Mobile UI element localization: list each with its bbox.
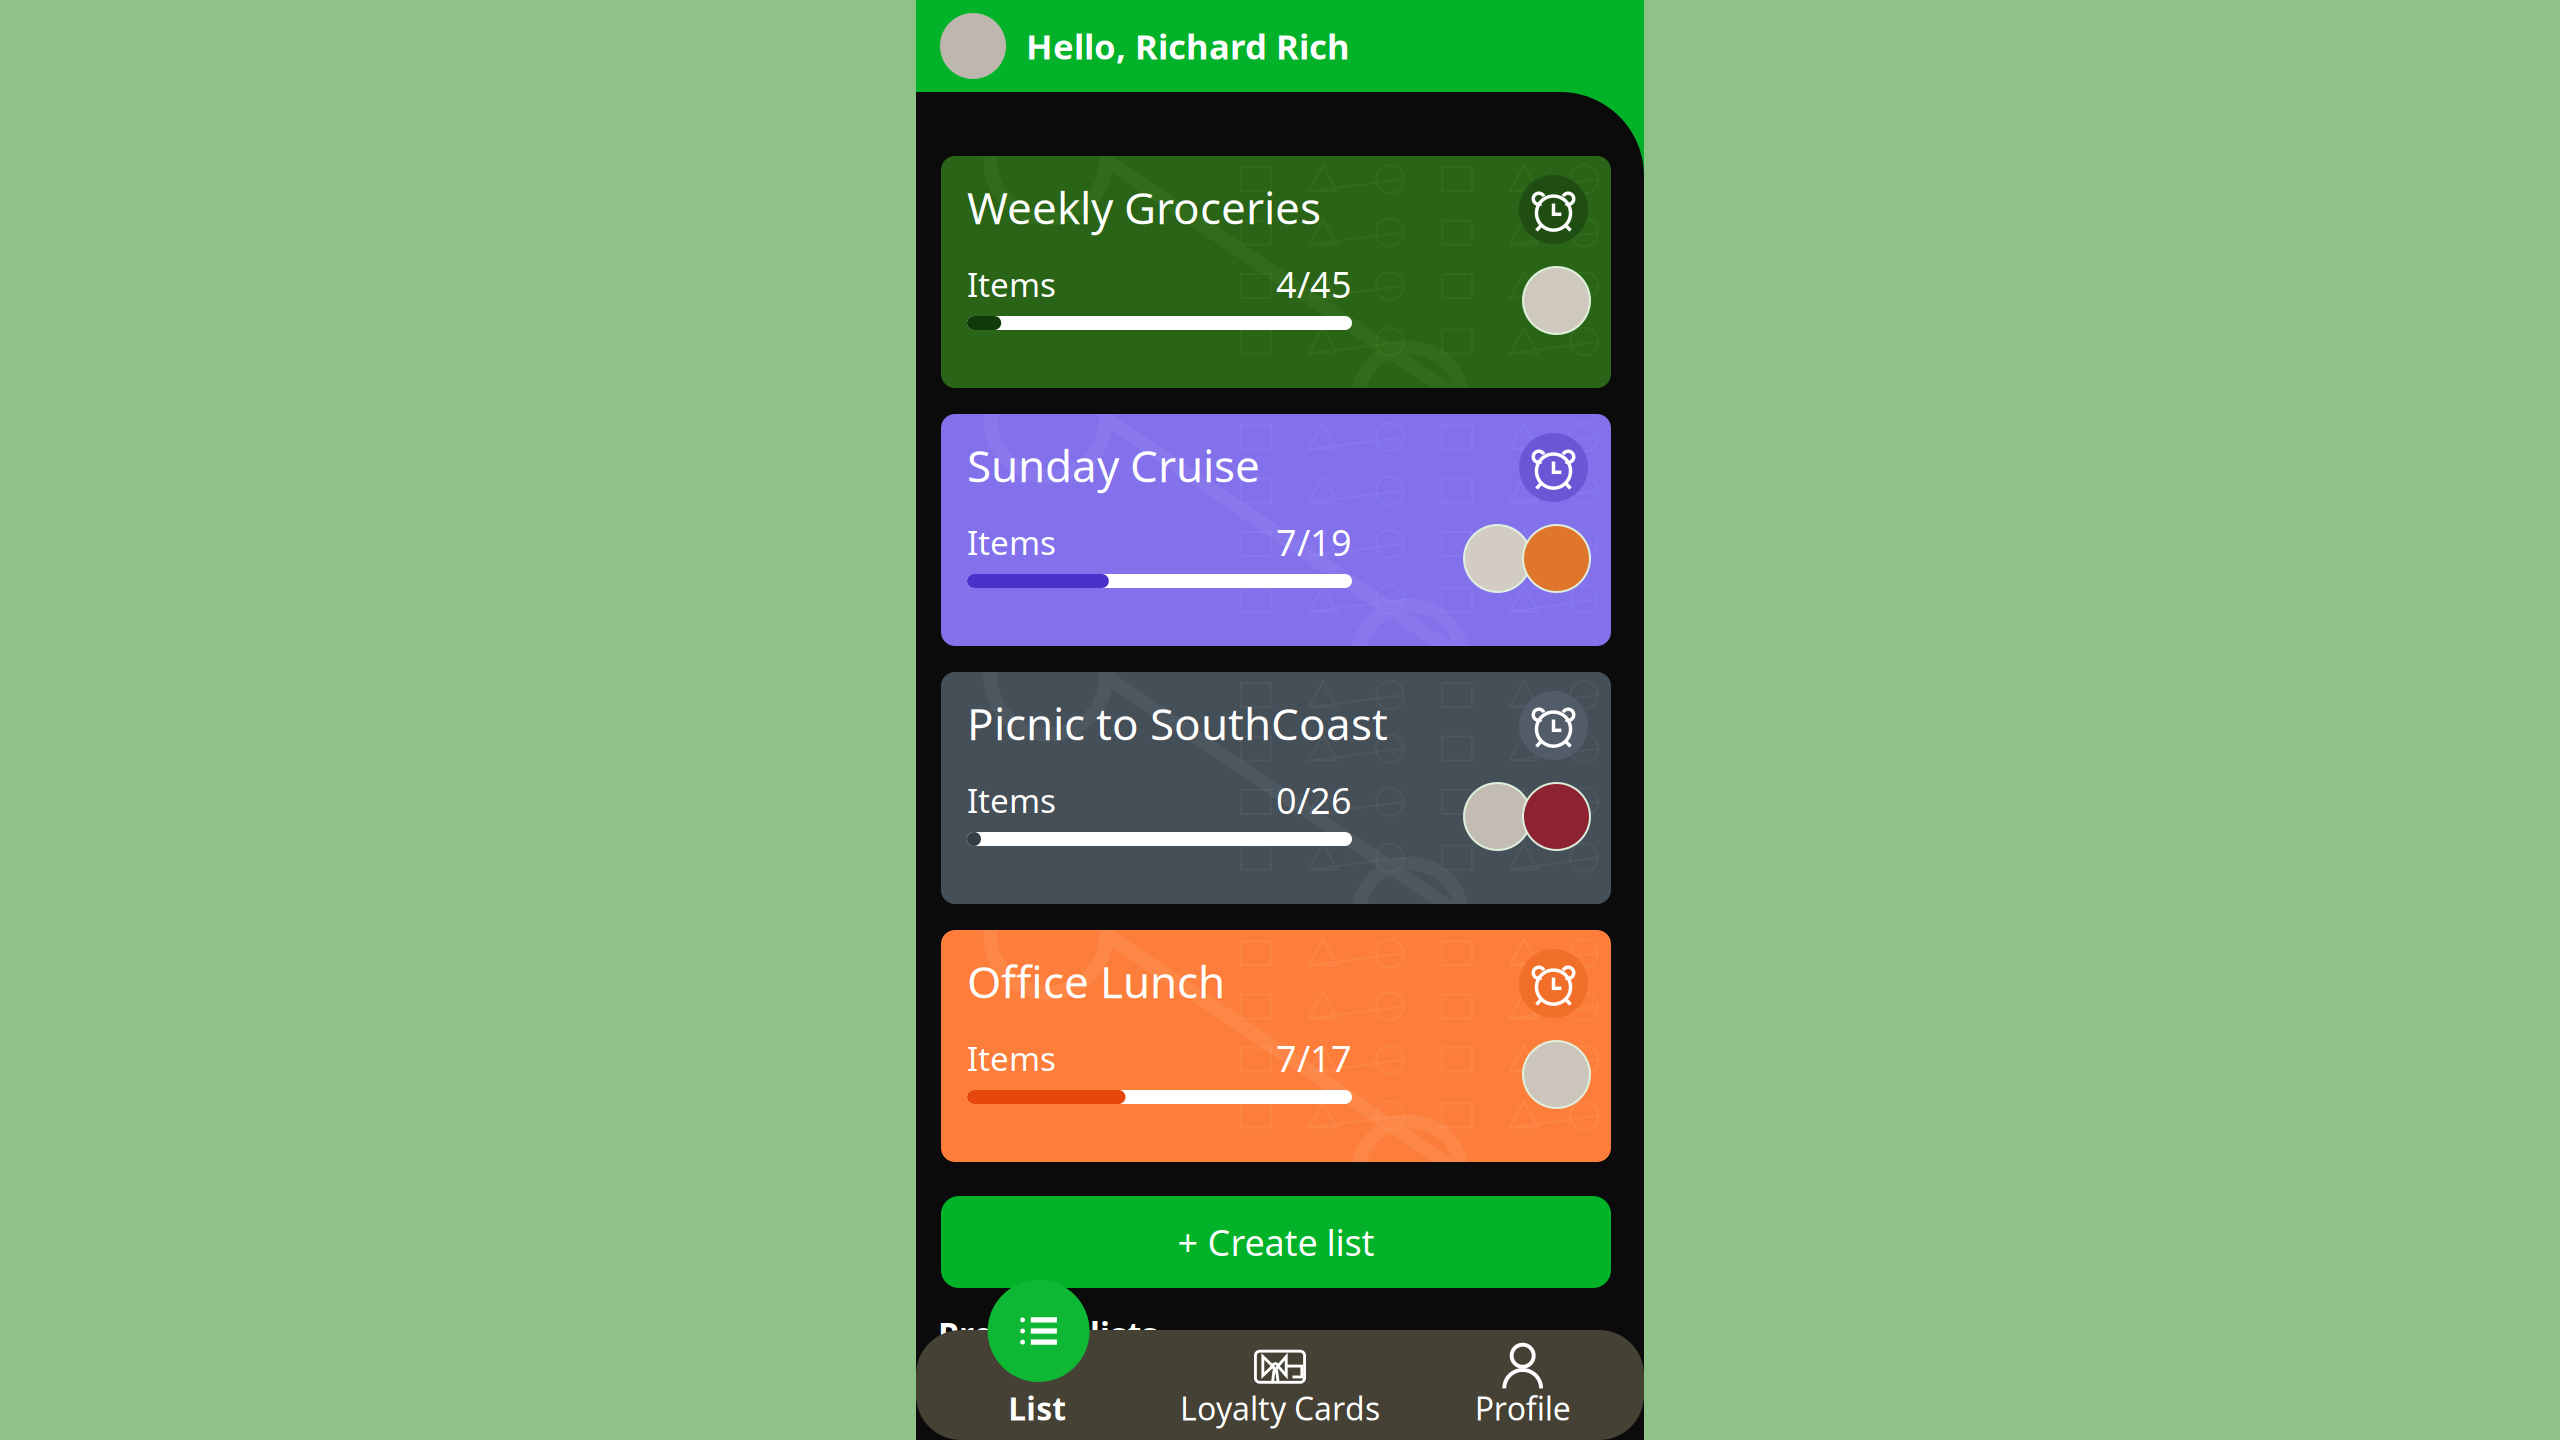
- staticText: Picnic to SouthCoast: [967, 694, 1388, 752]
- button[interactable]: Set reminder for Picnic to SouthCoast: [1519, 691, 1588, 760]
- staticText: Hello, Richard Rich: [1026, 23, 1350, 69]
- staticText: Office Lunch: [967, 952, 1225, 1010]
- button[interactable]: Loyalty Cards: [1159, 1330, 1401, 1440]
- button[interactable]: Set reminder for Sunday Cruise: [1519, 433, 1588, 502]
- staticText: 7/19: [1276, 518, 1352, 566]
- staticText: Weekly Groceries: [967, 178, 1321, 236]
- button[interactable]: Picnic to SouthCoast: [941, 672, 1611, 904]
- button[interactable]: Set reminder for Office Lunch: [1519, 949, 1588, 1018]
- button[interactable]: Office Lunch: [941, 930, 1611, 1162]
- staticText: Previous lists: [938, 1312, 1158, 1356]
- staticText: List: [1008, 1387, 1066, 1429]
- button[interactable]: Profile: [1401, 1330, 1644, 1440]
- staticText: 7/17: [1276, 1034, 1352, 1082]
- button[interactable]: Your profile photo: [940, 13, 1006, 79]
- staticText: Profile: [1475, 1387, 1571, 1429]
- staticText: 0/26: [1276, 776, 1352, 824]
- button[interactable]: List: [916, 1330, 1159, 1440]
- staticText: Items: [967, 778, 1056, 822]
- button[interactable]: Sunday Cruise: [941, 414, 1611, 646]
- button[interactable]: Set reminder for Weekly Groceries: [1519, 175, 1588, 244]
- staticText: Items: [967, 262, 1056, 306]
- staticText: 4/45: [1276, 260, 1352, 308]
- button[interactable]: Weekly Groceries: [941, 156, 1611, 388]
- staticText: + Create list: [1177, 1218, 1374, 1266]
- button[interactable]: List: [988, 1280, 1090, 1382]
- button[interactable]: + Create list: [941, 1196, 1611, 1288]
- staticText: Items: [967, 1036, 1056, 1080]
- staticText: Items: [967, 520, 1056, 564]
- staticText: Sunday Cruise: [967, 436, 1260, 494]
- staticText: Loyalty Cards: [1180, 1387, 1380, 1429]
